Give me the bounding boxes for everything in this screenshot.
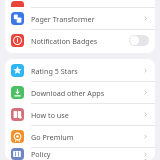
staticText: Go Premium [31,132,142,142]
staticText: Policy [31,149,142,159]
staticText: Notification Badges [31,36,129,46]
staticText: Download other Apps [31,88,142,98]
button[interactable]: How to use [5,104,155,125]
staticText: How to use [31,110,142,120]
button[interactable]: Notification Badges [5,30,155,51]
button[interactable]: Notification Badges toggle [129,35,149,46]
other: App settings [11,1,24,7]
button[interactable]: Pager Transformer [5,8,155,29]
button[interactable]: Download other Apps [5,82,155,103]
staticText: Rating 5 Stars [31,66,142,76]
button[interactable]: App settings [5,0,155,7]
button[interactable]: Policy [5,148,155,160]
button[interactable]: Rating 5 Stars [5,60,155,81]
button[interactable]: Go Premium [5,126,155,147]
staticText: Pager Transformer [31,14,142,24]
